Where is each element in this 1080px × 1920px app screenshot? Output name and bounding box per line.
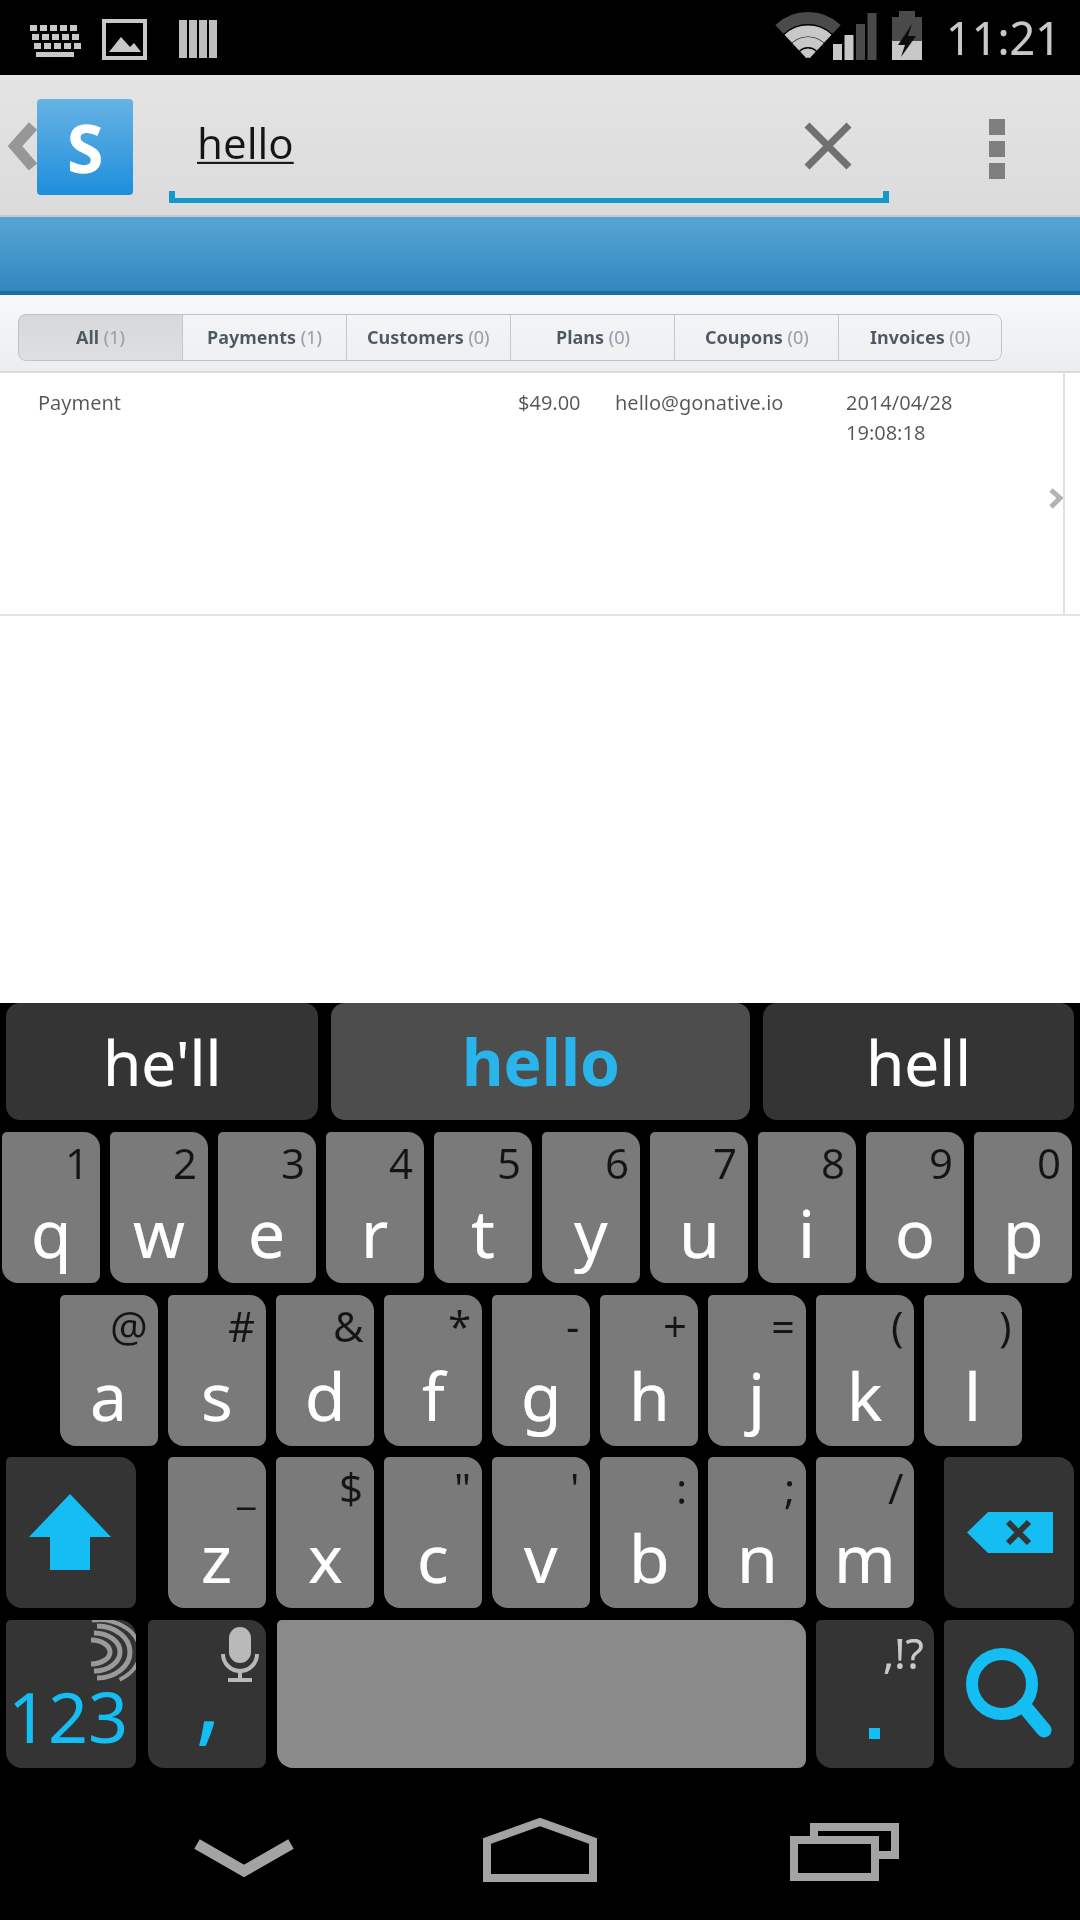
staticText: ': [570, 1459, 580, 1516]
button[interactable]: [775, 1798, 915, 1898]
button[interactable]: m: [816, 1457, 914, 1608]
button[interactable]: h: [600, 1295, 698, 1446]
button[interactable]: e: [218, 1132, 316, 1283]
staticText: 5: [497, 1134, 522, 1191]
button[interactable]: f: [384, 1295, 482, 1446]
staticText: e: [248, 1187, 286, 1277]
button[interactable]: hello: [331, 1003, 750, 1120]
button[interactable]: [944, 1620, 1074, 1768]
button[interactable]: t: [434, 1132, 532, 1283]
button[interactable]: [0, 373, 1080, 615]
staticText: $49.00: [518, 389, 581, 416]
button[interactable]: [944, 1457, 1074, 1608]
button[interactable]: [960, 105, 1036, 195]
button[interactable]: Invoices (0): [839, 314, 1002, 361]
staticText: hello: [197, 114, 294, 171]
button[interactable]: Coupons (0): [675, 314, 838, 361]
staticText: _: [237, 1459, 256, 1516]
staticText: Customers (0): [367, 325, 490, 350]
staticText: ,!?: [883, 1624, 924, 1681]
staticText: v: [524, 1512, 558, 1602]
staticText: 2014/04/28: [846, 389, 953, 416]
button[interactable]: r: [326, 1132, 424, 1283]
staticText: q: [31, 1187, 72, 1277]
staticText: he'll: [103, 1020, 222, 1104]
button[interactable]: l: [924, 1295, 1022, 1446]
staticText: k: [847, 1350, 883, 1440]
button[interactable]: 123: [6, 1620, 136, 1768]
button[interactable]: o: [866, 1132, 964, 1283]
staticText: g: [521, 1350, 562, 1440]
button[interactable]: z: [168, 1457, 266, 1608]
staticText: Payments (1): [207, 325, 322, 350]
button[interactable]: All (1): [18, 314, 182, 361]
button[interactable]: hell: [763, 1003, 1074, 1120]
button[interactable]: j: [708, 1295, 806, 1446]
staticText: j: [748, 1350, 766, 1440]
staticText: o: [895, 1187, 935, 1277]
button[interactable]: x: [276, 1457, 374, 1608]
staticText: 1: [65, 1134, 90, 1191]
button[interactable]: [470, 1798, 610, 1898]
staticText: ;: [784, 1459, 796, 1516]
staticText: +: [663, 1297, 688, 1354]
button[interactable]: [790, 108, 866, 184]
button[interactable]: ,!?: [816, 1620, 934, 1768]
staticText: a: [90, 1350, 128, 1440]
button[interactable]: [277, 1620, 806, 1768]
staticText: /: [888, 1459, 904, 1516]
staticText: 4: [389, 1134, 414, 1191]
button[interactable]: q: [2, 1132, 100, 1283]
staticText: 11:21: [946, 7, 1062, 68]
staticText: y: [574, 1187, 608, 1277]
staticText: i: [798, 1187, 816, 1277]
staticText: s: [201, 1350, 233, 1440]
button[interactable]: [6, 1457, 136, 1608]
staticText: t: [471, 1187, 495, 1277]
staticText: 8: [821, 1134, 846, 1191]
staticText: 123: [8, 1668, 129, 1763]
staticText: Coupons (0): [705, 325, 809, 350]
staticText: 19:08:18: [846, 419, 926, 446]
button[interactable]: he'll: [6, 1003, 318, 1120]
staticText: m: [834, 1512, 896, 1602]
staticText: p: [1003, 1187, 1044, 1277]
staticText: x: [308, 1512, 343, 1602]
button[interactable]: y: [542, 1132, 640, 1283]
staticText: 6: [605, 1134, 630, 1191]
staticText: 7: [713, 1134, 738, 1191]
staticText: =: [771, 1297, 796, 1354]
staticText: 0: [1037, 1134, 1062, 1191]
button[interactable]: c: [384, 1457, 482, 1608]
button[interactable]: [180, 1808, 310, 1898]
staticText: ,: [195, 1626, 222, 1762]
button[interactable]: k: [816, 1295, 914, 1446]
button[interactable]: v: [492, 1457, 590, 1608]
staticText: u: [679, 1187, 720, 1277]
button[interactable]: Customers (0): [347, 314, 510, 361]
staticText: Plans (0): [556, 325, 630, 350]
button[interactable]: p: [974, 1132, 1072, 1283]
staticText: -: [566, 1297, 580, 1354]
staticText: &: [333, 1297, 364, 1354]
staticText: z: [201, 1512, 233, 1602]
button[interactable]: u: [650, 1132, 748, 1283]
button[interactable]: n: [708, 1457, 806, 1608]
button[interactable]: b: [600, 1457, 698, 1608]
button[interactable]: Plans (0): [511, 314, 674, 361]
staticText: n: [737, 1512, 778, 1602]
staticText: b: [629, 1512, 670, 1602]
staticText: *: [448, 1297, 472, 1354]
staticText: Invoices (0): [870, 325, 971, 350]
staticText: 2: [173, 1134, 198, 1191]
button[interactable]: d: [276, 1295, 374, 1446]
staticText: hello: [462, 1018, 620, 1105]
button[interactable]: S: [37, 99, 133, 195]
button[interactable]: g: [492, 1295, 590, 1446]
button[interactable]: i: [758, 1132, 856, 1283]
button[interactable]: Payments (1): [183, 314, 346, 361]
button[interactable]: ,: [148, 1620, 266, 1768]
button[interactable]: a: [60, 1295, 158, 1446]
button[interactable]: w: [110, 1132, 208, 1283]
button[interactable]: s: [168, 1295, 266, 1446]
